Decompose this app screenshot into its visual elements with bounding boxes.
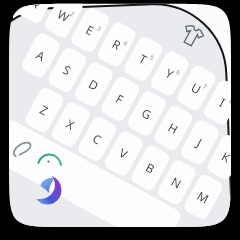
button[interactable]: Keyboard theme preview bbox=[0, 0, 240, 240]
